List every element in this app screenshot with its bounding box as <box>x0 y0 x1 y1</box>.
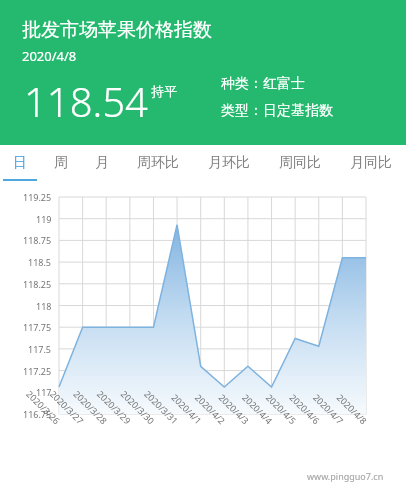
staticText: 日 <box>13 154 27 172</box>
button[interactable]: 周环比 <box>122 145 193 181</box>
button[interactable]: 月同比 <box>335 145 406 181</box>
staticText: 周同比 <box>279 154 321 172</box>
staticText: 月 <box>95 154 109 172</box>
staticText: 月环比 <box>208 154 250 172</box>
button[interactable]: 月 <box>81 145 122 181</box>
button[interactable]: 月环比 <box>193 145 264 181</box>
staticText: 类型：日定基指数 <box>221 102 333 120</box>
button[interactable]: 日 <box>0 145 40 181</box>
staticText: 118.54 <box>24 74 148 128</box>
staticText: 周 <box>54 154 68 172</box>
staticText: 周环比 <box>137 154 179 172</box>
staticText: www.pingguo7.cn <box>307 470 384 482</box>
button[interactable]: 周 <box>40 145 81 181</box>
staticText: 2020/4/8 <box>22 47 77 65</box>
button[interactable]: 周同比 <box>264 145 335 181</box>
staticText: 持平 <box>151 83 177 99</box>
staticText: 月同比 <box>350 154 392 172</box>
staticText: 批发市场苹果价格指数 <box>22 18 212 42</box>
staticText: 种类：红富士 <box>221 75 305 93</box>
